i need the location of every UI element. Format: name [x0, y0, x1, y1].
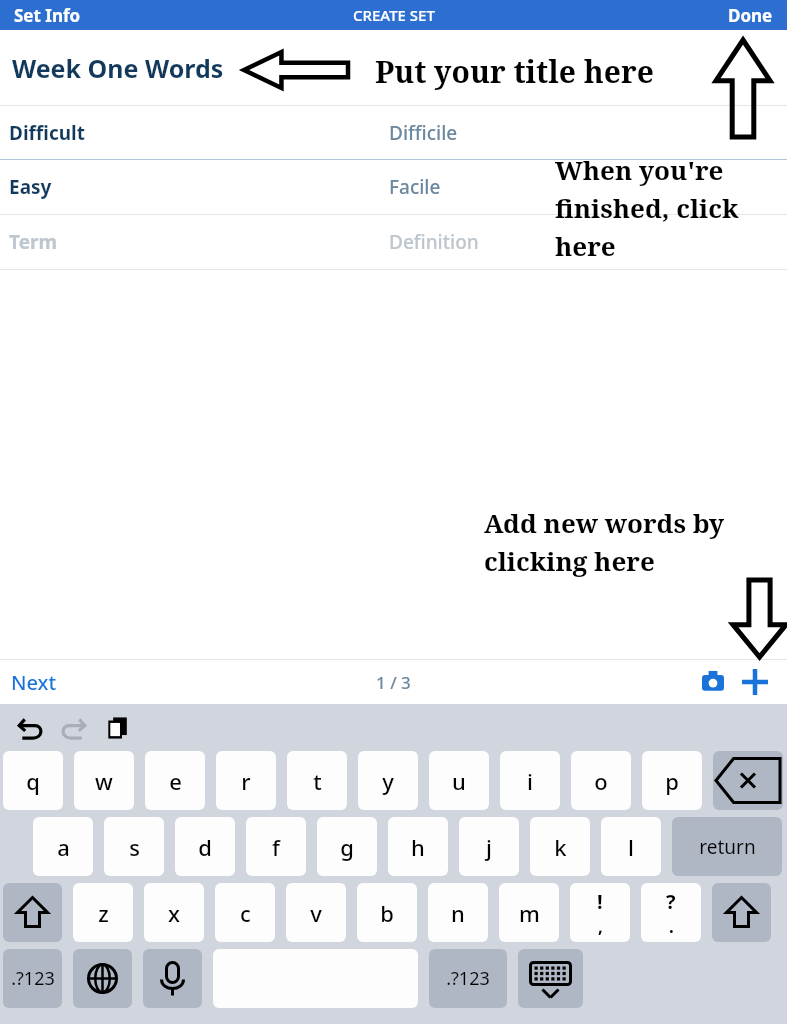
staticText: t [313, 766, 322, 796]
staticText: g [340, 832, 354, 862]
button[interactable]: Difficult [0, 106, 787, 159]
staticText: x [168, 898, 180, 928]
button[interactable]: ? [641, 883, 701, 942]
staticText: j [486, 832, 492, 862]
button[interactable]: j [459, 817, 519, 876]
button[interactable]: c [215, 883, 275, 942]
button[interactable]: Set Info [0, 1, 95, 30]
button[interactable]: Easy [0, 160, 787, 214]
staticText: r [241, 766, 251, 796]
staticText: return [699, 834, 756, 860]
staticText: ? [666, 888, 676, 915]
button[interactable]: t [287, 751, 347, 810]
staticText: Put your title here [375, 51, 654, 92]
button[interactable]: h [388, 817, 448, 876]
staticText: q [26, 766, 40, 796]
button[interactable]: Shift [712, 883, 771, 942]
button[interactable]: b [357, 883, 417, 942]
button[interactable]: e [145, 751, 205, 810]
staticText: h [411, 832, 425, 862]
staticText: When you're finished, click here [555, 152, 739, 263]
staticText: 1 / 3 [376, 671, 411, 694]
staticText: l [628, 832, 634, 862]
staticText: i [527, 766, 533, 796]
staticText: Add new words by clicking here [484, 505, 725, 578]
button[interactable]: u [429, 751, 489, 810]
staticText: Term [9, 229, 389, 255]
button[interactable]: Redo [52, 706, 96, 750]
staticText: Set Info [14, 4, 81, 27]
button[interactable]: a [33, 817, 93, 876]
button[interactable]: Change language [73, 949, 132, 1008]
button[interactable]: Week One Words [12, 51, 224, 85]
staticText: a [57, 832, 70, 862]
button[interactable]: s [104, 817, 164, 876]
button[interactable]: Paste [96, 706, 140, 750]
staticText: c [240, 898, 251, 928]
staticText: p [665, 766, 679, 796]
button[interactable]: w [74, 751, 134, 810]
button[interactable]: Done [714, 1, 787, 30]
staticText: k [554, 832, 567, 862]
staticText: Done [728, 4, 773, 27]
staticText: ! [597, 888, 603, 915]
staticText: Difficult [9, 120, 389, 146]
staticText: . [669, 915, 674, 938]
button[interactable]: q [3, 751, 63, 810]
button[interactable]: x [144, 883, 204, 942]
staticText: w [95, 766, 113, 796]
button[interactable]: .?123 [3, 949, 62, 1008]
staticText: v [310, 898, 322, 928]
staticText: o [594, 766, 608, 796]
staticText: s [129, 832, 140, 862]
button[interactable]: z [73, 883, 133, 942]
button[interactable]: d [175, 817, 235, 876]
button[interactable]: r [216, 751, 276, 810]
button[interactable]: i [500, 751, 560, 810]
button[interactable]: Hide keyboard [518, 949, 583, 1008]
button[interactable]: Undo [8, 706, 52, 750]
button[interactable]: v [286, 883, 346, 942]
button[interactable]: Term [0, 215, 787, 269]
staticText: , [598, 915, 603, 938]
button[interactable]: y [358, 751, 418, 810]
button[interactable]: Dictation [143, 949, 202, 1008]
button[interactable]: .?123 [429, 949, 507, 1008]
staticText: d [198, 832, 212, 862]
staticText: Definition [389, 229, 479, 255]
staticText: Next [11, 669, 57, 696]
staticText: n [451, 898, 465, 928]
button[interactable]: return [672, 817, 782, 876]
staticText: Easy [9, 174, 389, 200]
staticText: .?123 [11, 966, 55, 991]
staticText: u [452, 766, 466, 796]
button[interactable]: k [530, 817, 590, 876]
staticText: f [272, 832, 280, 862]
staticText: b [380, 898, 394, 928]
button[interactable]: p [642, 751, 702, 810]
staticText: Facile [389, 174, 441, 200]
button[interactable]: f [246, 817, 306, 876]
staticText: .?123 [446, 966, 490, 991]
button[interactable]: Add photo [693, 662, 733, 702]
staticText: CREATE SET [353, 5, 435, 25]
staticText: y [382, 766, 394, 796]
staticText: e [169, 766, 182, 796]
staticText: Difficile [389, 120, 458, 146]
button[interactable]: l [601, 817, 661, 876]
button[interactable]: m [499, 883, 559, 942]
button[interactable]: Next [0, 663, 68, 702]
button[interactable]: Add row [733, 660, 777, 704]
button[interactable]: n [428, 883, 488, 942]
button[interactable]: o [571, 751, 631, 810]
button[interactable]: g [317, 817, 377, 876]
button[interactable]: Shift [3, 883, 62, 942]
button[interactable]: ! [570, 883, 630, 942]
button[interactable]: Backspace [713, 751, 783, 810]
staticText: m [519, 898, 540, 928]
staticText: z [98, 898, 109, 928]
